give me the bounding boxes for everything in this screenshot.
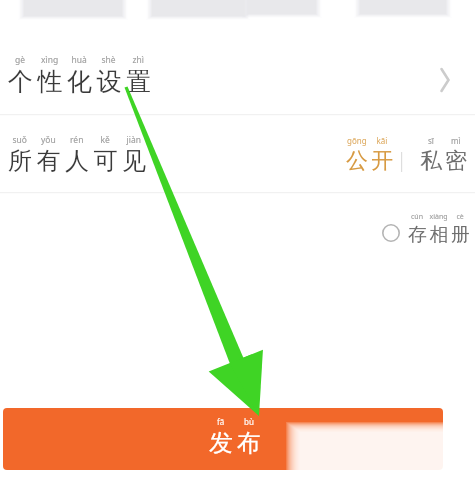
button[interactable] xyxy=(0,126,330,186)
button[interactable]: 发布 xyxy=(3,408,443,470)
button[interactable]: 公开 xyxy=(336,140,398,178)
button[interactable]: 私密 xyxy=(410,140,470,178)
button[interactable]: 存相册 xyxy=(378,216,474,250)
button[interactable] xyxy=(0,48,475,110)
